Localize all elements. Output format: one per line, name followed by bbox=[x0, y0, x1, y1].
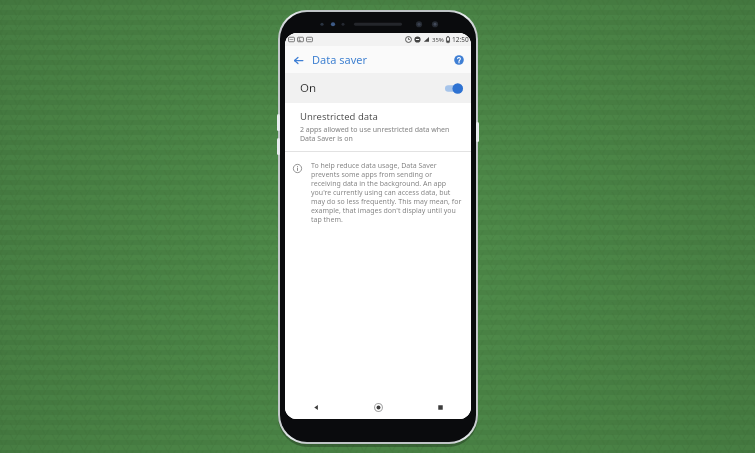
staticText: 2 apps allowed to use unrestricted data … bbox=[300, 125, 463, 143]
staticText: Unrestricted data bbox=[300, 110, 378, 123]
staticText: 35% bbox=[432, 36, 444, 44]
staticText: To help reduce data usage, Data Saver pr… bbox=[311, 161, 462, 224]
button[interactable]: Back bbox=[285, 395, 347, 419]
button[interactable]: Navigate up bbox=[288, 50, 308, 70]
button[interactable]: Home bbox=[347, 395, 409, 419]
button[interactable]: Recent apps bbox=[409, 395, 471, 419]
staticText: On bbox=[300, 80, 317, 96]
staticText: 12:50 bbox=[452, 35, 469, 44]
button[interactable]: Help bbox=[450, 51, 468, 69]
button[interactable]: Unrestricted data bbox=[285, 103, 471, 151]
button[interactable]: On bbox=[285, 73, 471, 103]
other: Information bbox=[290, 161, 304, 175]
staticText: Data saver bbox=[312, 52, 367, 67]
other: Data Saver on bbox=[445, 83, 463, 94]
